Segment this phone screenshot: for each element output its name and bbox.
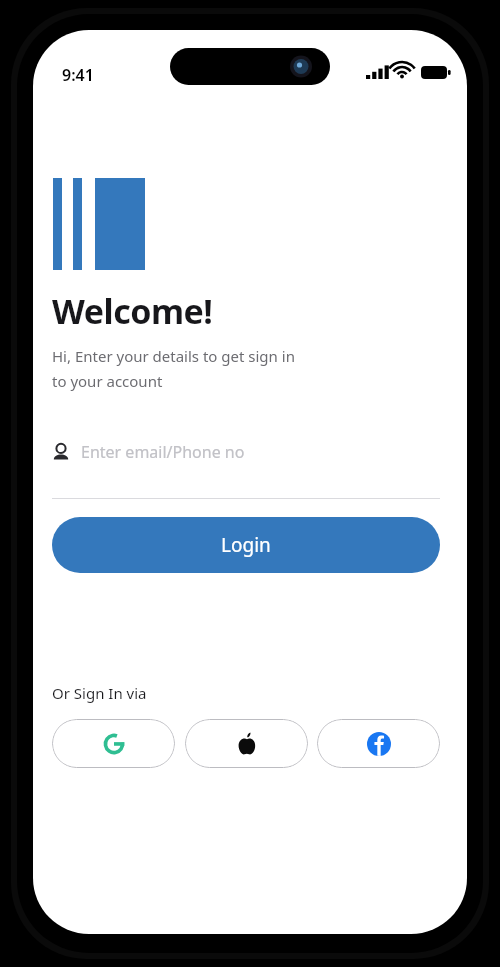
button[interactable]: Sign in with Google — [52, 719, 175, 768]
staticText: 9:41 — [62, 64, 94, 86]
button[interactable]: Sign in with Apple — [185, 719, 308, 768]
staticText: Hi, Enter your details to get sign in to… — [52, 346, 342, 391]
button[interactable]: Enter email/Phone no — [52, 430, 440, 474]
button[interactable]: Login — [52, 517, 440, 573]
button[interactable]: Sign in with Facebook — [317, 719, 440, 768]
staticText: Login — [221, 532, 271, 558]
staticText: Enter email/Phone no — [81, 441, 245, 463]
staticText: Or Sign In via — [52, 683, 147, 703]
staticText: Welcome! — [52, 288, 213, 334]
